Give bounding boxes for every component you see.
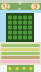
staticText: 12 — [2, 3, 8, 10]
button[interactable]: Action — [14, 65, 20, 71]
button[interactable]: Row — [1, 60, 40, 63]
button[interactable]: Action — [7, 65, 13, 71]
button[interactable]: Action — [28, 65, 34, 71]
staticText: LEVEL 8 — [18, 0, 23, 28]
button[interactable]: Action — [21, 65, 27, 71]
button[interactable]: Row — [1, 56, 40, 59]
button[interactable]: Row — [1, 44, 40, 47]
button[interactable]: 12 — [1, 3, 10, 9]
staticText: 3 — [34, 3, 37, 10]
button[interactable]: 3 — [31, 3, 40, 9]
button[interactable]: Row — [1, 52, 40, 55]
button[interactable]: Row — [1, 48, 40, 51]
